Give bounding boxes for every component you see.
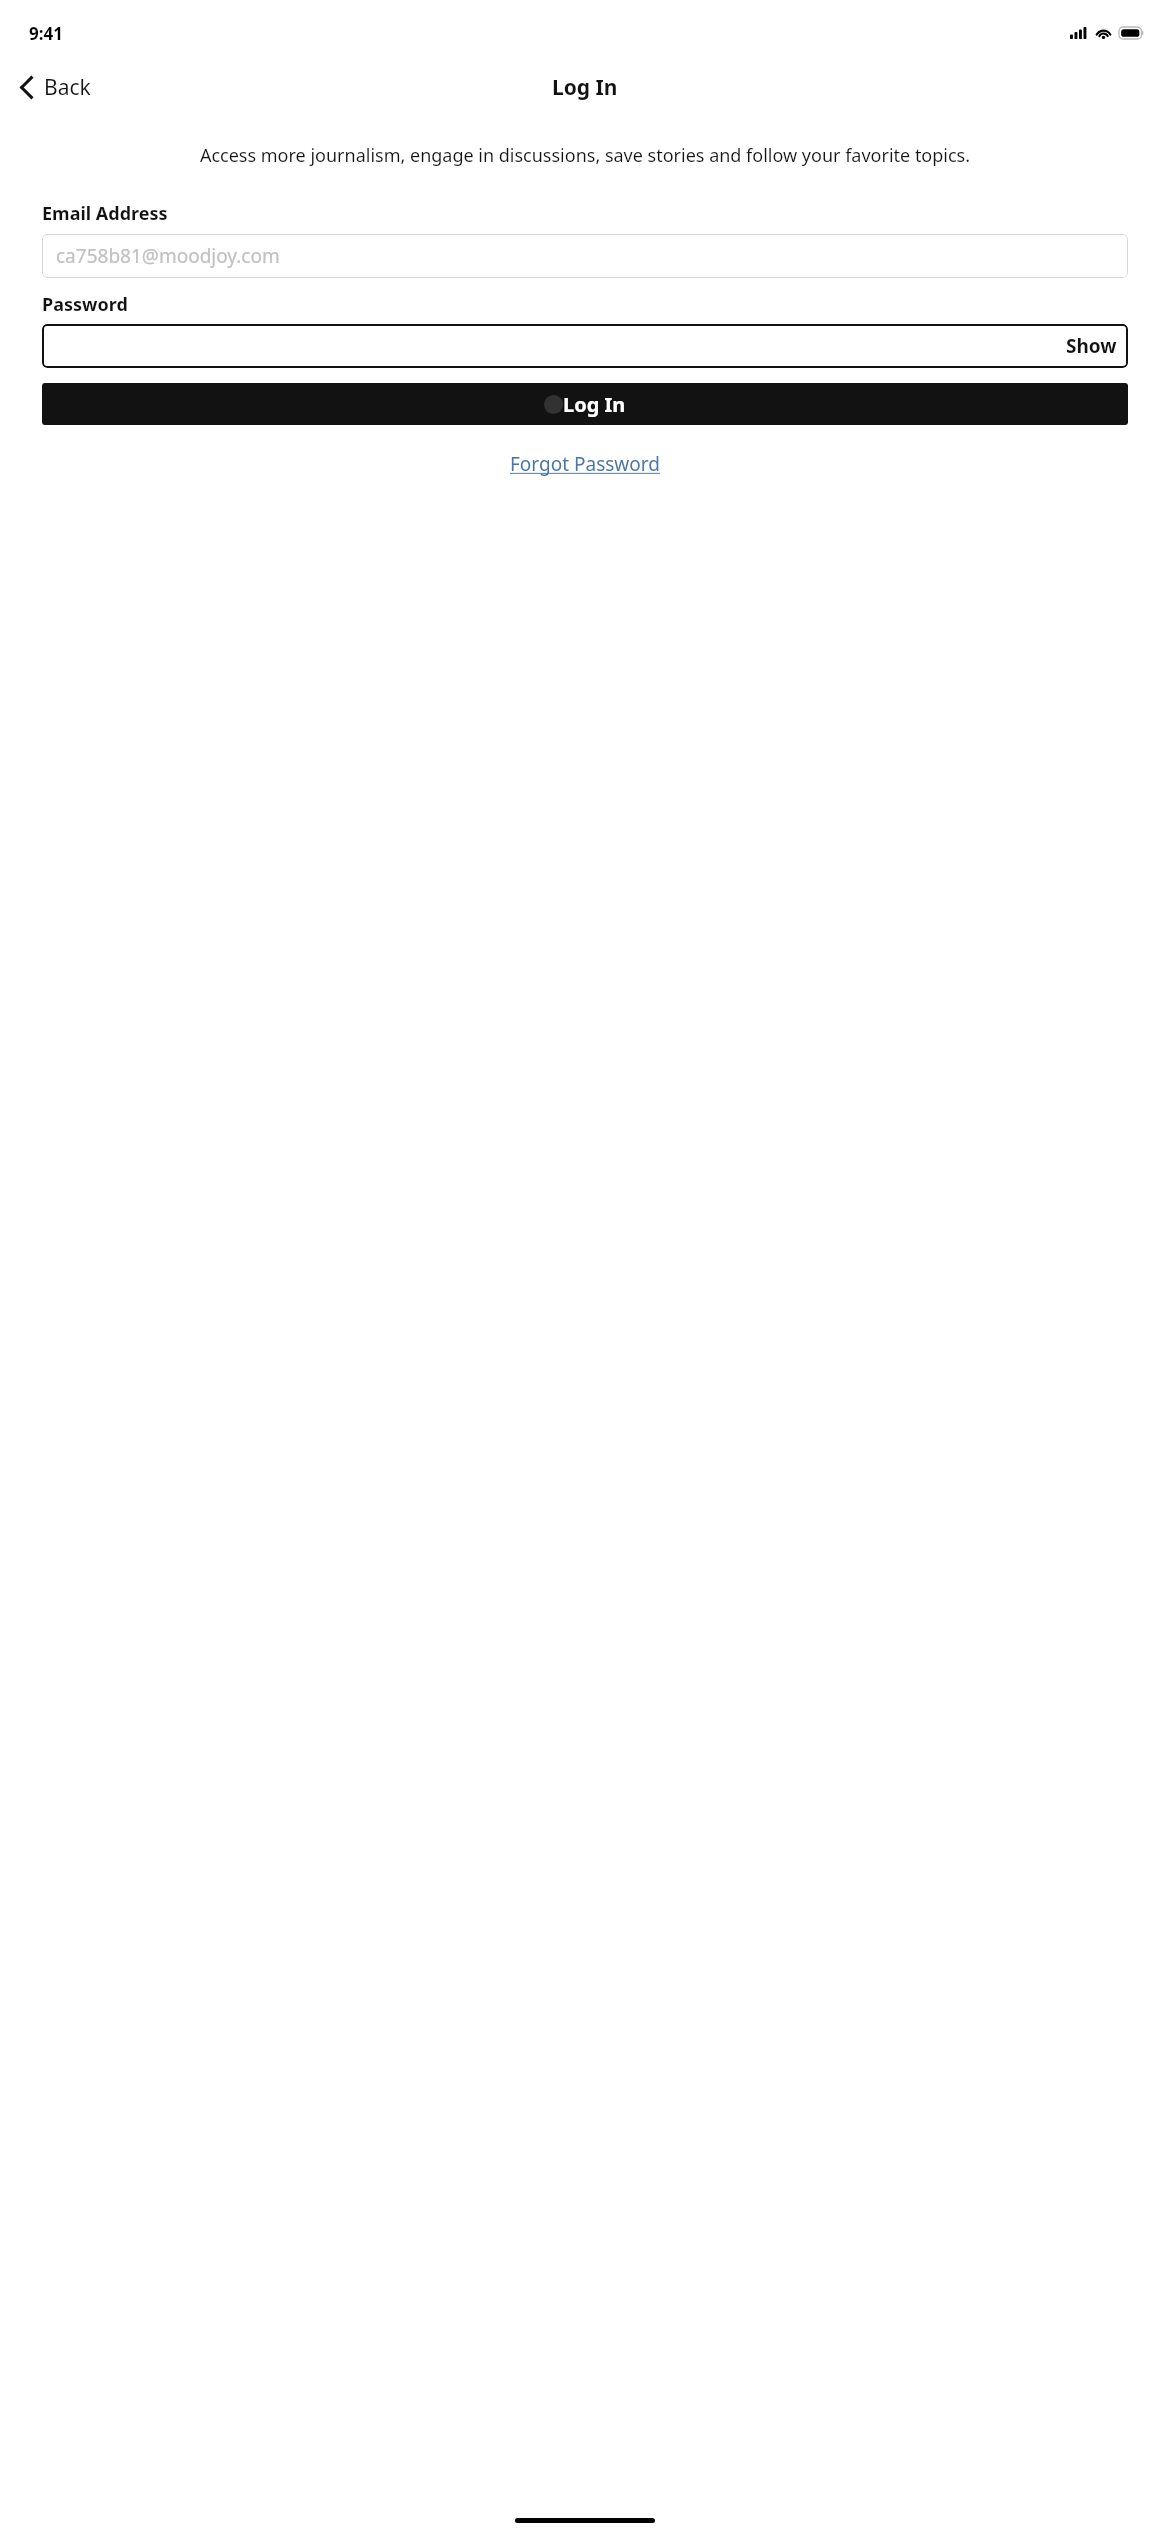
staticText: Forgot Password xyxy=(510,451,660,477)
staticText: Show xyxy=(1066,333,1117,359)
button[interactable]: Forgot Password xyxy=(500,445,670,483)
button[interactable]: Back xyxy=(0,65,109,110)
staticText: Access more journalism, engage in discus… xyxy=(32,143,1138,168)
button[interactable]: Show xyxy=(42,324,1128,368)
staticText: Back xyxy=(44,73,91,102)
button[interactable]: ca758b81@moodjoy.com xyxy=(42,234,1128,278)
staticText: Log In xyxy=(563,391,626,418)
button[interactable]: Show xyxy=(1055,326,1128,366)
button[interactable]: Log In xyxy=(42,383,1128,425)
staticText: Log In xyxy=(552,73,618,102)
staticText: 9:41 xyxy=(29,22,63,45)
staticText: Password xyxy=(42,292,128,317)
staticText: ca758b81@moodjoy.com xyxy=(56,243,280,269)
staticText: Email Address xyxy=(42,201,168,226)
